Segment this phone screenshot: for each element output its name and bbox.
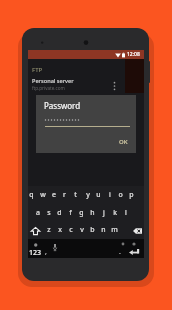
button[interactable]: Enter [125,239,144,258]
button[interactable]: u [93,186,104,204]
staticText: o [118,190,123,200]
staticText: FTP [32,66,43,74]
staticText: a [36,208,40,218]
staticText: y [86,190,90,200]
staticText: 12:08 [127,51,140,58]
button[interactable]: 123 [28,239,43,258]
staticText: h [90,208,95,218]
button[interactable]: x [54,221,65,239]
staticText: c [69,225,73,235]
button[interactable]: z [43,221,54,239]
button[interactable]: Backspace [129,221,144,239]
button[interactable]: OK [114,136,132,148]
button[interactable]: h [87,204,98,221]
staticText: q [29,190,34,200]
staticText: v [80,225,84,235]
button[interactable]: g [76,204,87,221]
staticText: . [119,247,121,257]
staticText: k [113,208,117,218]
button[interactable]: More options [108,78,121,94]
staticText: d [57,208,62,218]
button[interactable]: l [120,204,131,221]
staticText: OK [119,138,128,146]
staticText: w [40,190,46,200]
button[interactable]: d [54,204,65,221]
button[interactable]: f [65,204,76,221]
button[interactable]: i [104,186,115,204]
button[interactable]: e [48,186,59,204]
staticText: i [109,190,111,200]
button[interactable]: y [82,186,93,204]
staticText: t [74,190,77,200]
button[interactable]: s [43,204,54,221]
staticText: u [96,190,101,200]
button[interactable]: b [87,221,98,239]
button[interactable]: r [59,186,70,204]
button[interactable]: , [41,239,51,258]
staticText: b [90,225,95,235]
staticText: z [47,225,51,235]
button[interactable]: Voice input [49,239,60,258]
button[interactable]: Shift [28,221,42,239]
staticText: m [111,225,118,235]
staticText: x [58,225,62,235]
button[interactable]: q [26,186,37,204]
staticText: s [47,208,51,218]
button[interactable]: j [98,204,109,221]
staticText: 123 [29,248,42,258]
staticText: Password [44,100,81,111]
button[interactable]: . [115,239,125,258]
staticText: p [129,190,134,200]
button[interactable]: t [70,186,81,204]
button[interactable]: v [76,221,87,239]
button[interactable]: o [115,186,126,204]
button[interactable]: k [109,204,120,221]
button[interactable]: p [126,186,137,204]
staticText: , [45,247,47,257]
staticText: r [63,190,66,200]
button[interactable]: c [65,221,76,239]
staticText: n [101,225,106,235]
staticText: g [79,208,84,218]
staticText: e [52,190,56,200]
button[interactable]: m [109,221,120,239]
button[interactable]: a [32,204,43,221]
staticText: j [103,208,105,218]
staticText: Personal server [32,77,74,85]
staticText: ftp.private.com [32,85,65,91]
staticText: f [69,208,72,218]
button[interactable]: w [37,186,48,204]
staticText: l [125,208,127,218]
button[interactable]: Personal server [28,75,144,93]
button[interactable]: n [98,221,109,239]
